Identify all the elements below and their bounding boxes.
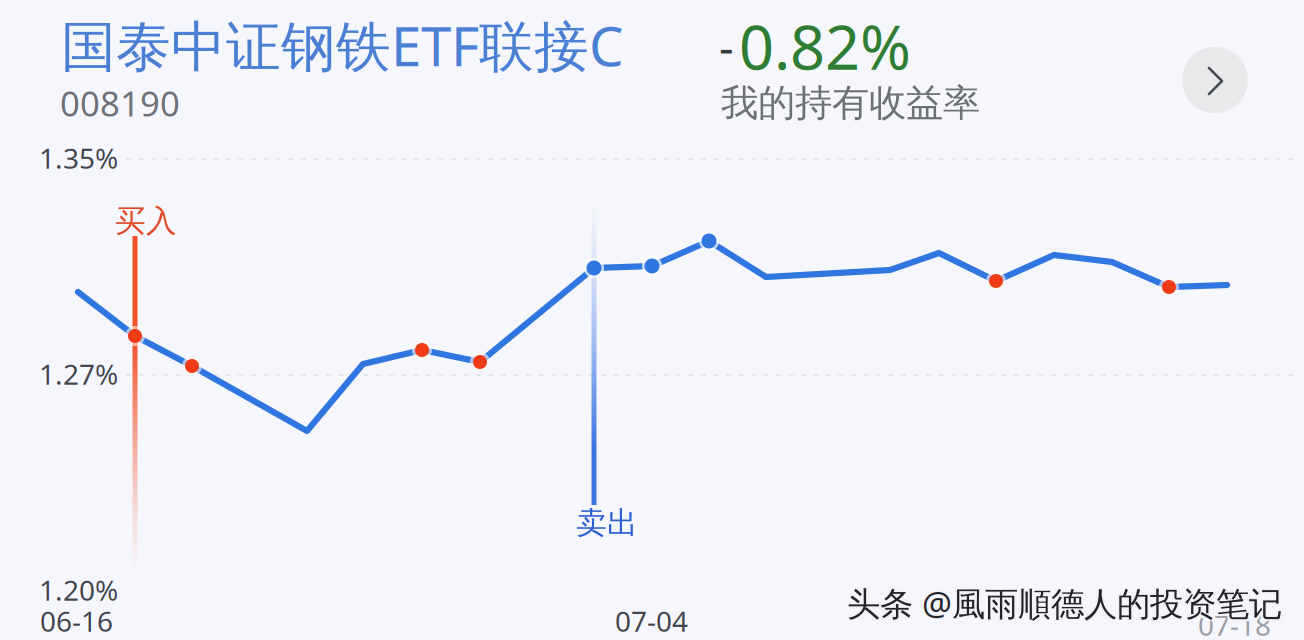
staticText: 07-18 — [1198, 606, 1271, 640]
staticText: 头条 @風雨順德人的投资笔记 — [847, 581, 1282, 625]
staticText: 1.27% — [39, 355, 118, 393]
staticText: 国泰中证钢铁ETF联接C — [61, 9, 624, 81]
button[interactable]: 国泰中证钢铁ETF联接C — [0, 0, 1304, 132]
staticText: 我的持有收益率 — [721, 80, 980, 126]
staticText: 1.20% — [39, 571, 118, 609]
button[interactable]: Fund details — [1182, 47, 1248, 113]
staticText: 头条 @風雨順德人的投资笔记 — [845, 583, 1280, 627]
staticText: 008190 — [60, 80, 180, 126]
staticText: 买入 — [115, 202, 177, 240]
staticText: 头条 @風雨順德人的投资笔记 — [845, 579, 1280, 623]
staticText: - — [719, 16, 734, 76]
staticText: 07-04 — [615, 602, 688, 640]
staticText: 头条 @風雨順德人的投资笔记 — [849, 579, 1284, 623]
staticText: 06-16 — [40, 602, 113, 640]
staticText: 0.82% — [739, 5, 911, 87]
staticText: 头条 @風雨順德人的投资笔记 — [849, 583, 1284, 627]
staticText: 1.35% — [39, 139, 118, 177]
staticText: 卖出 — [576, 504, 638, 542]
